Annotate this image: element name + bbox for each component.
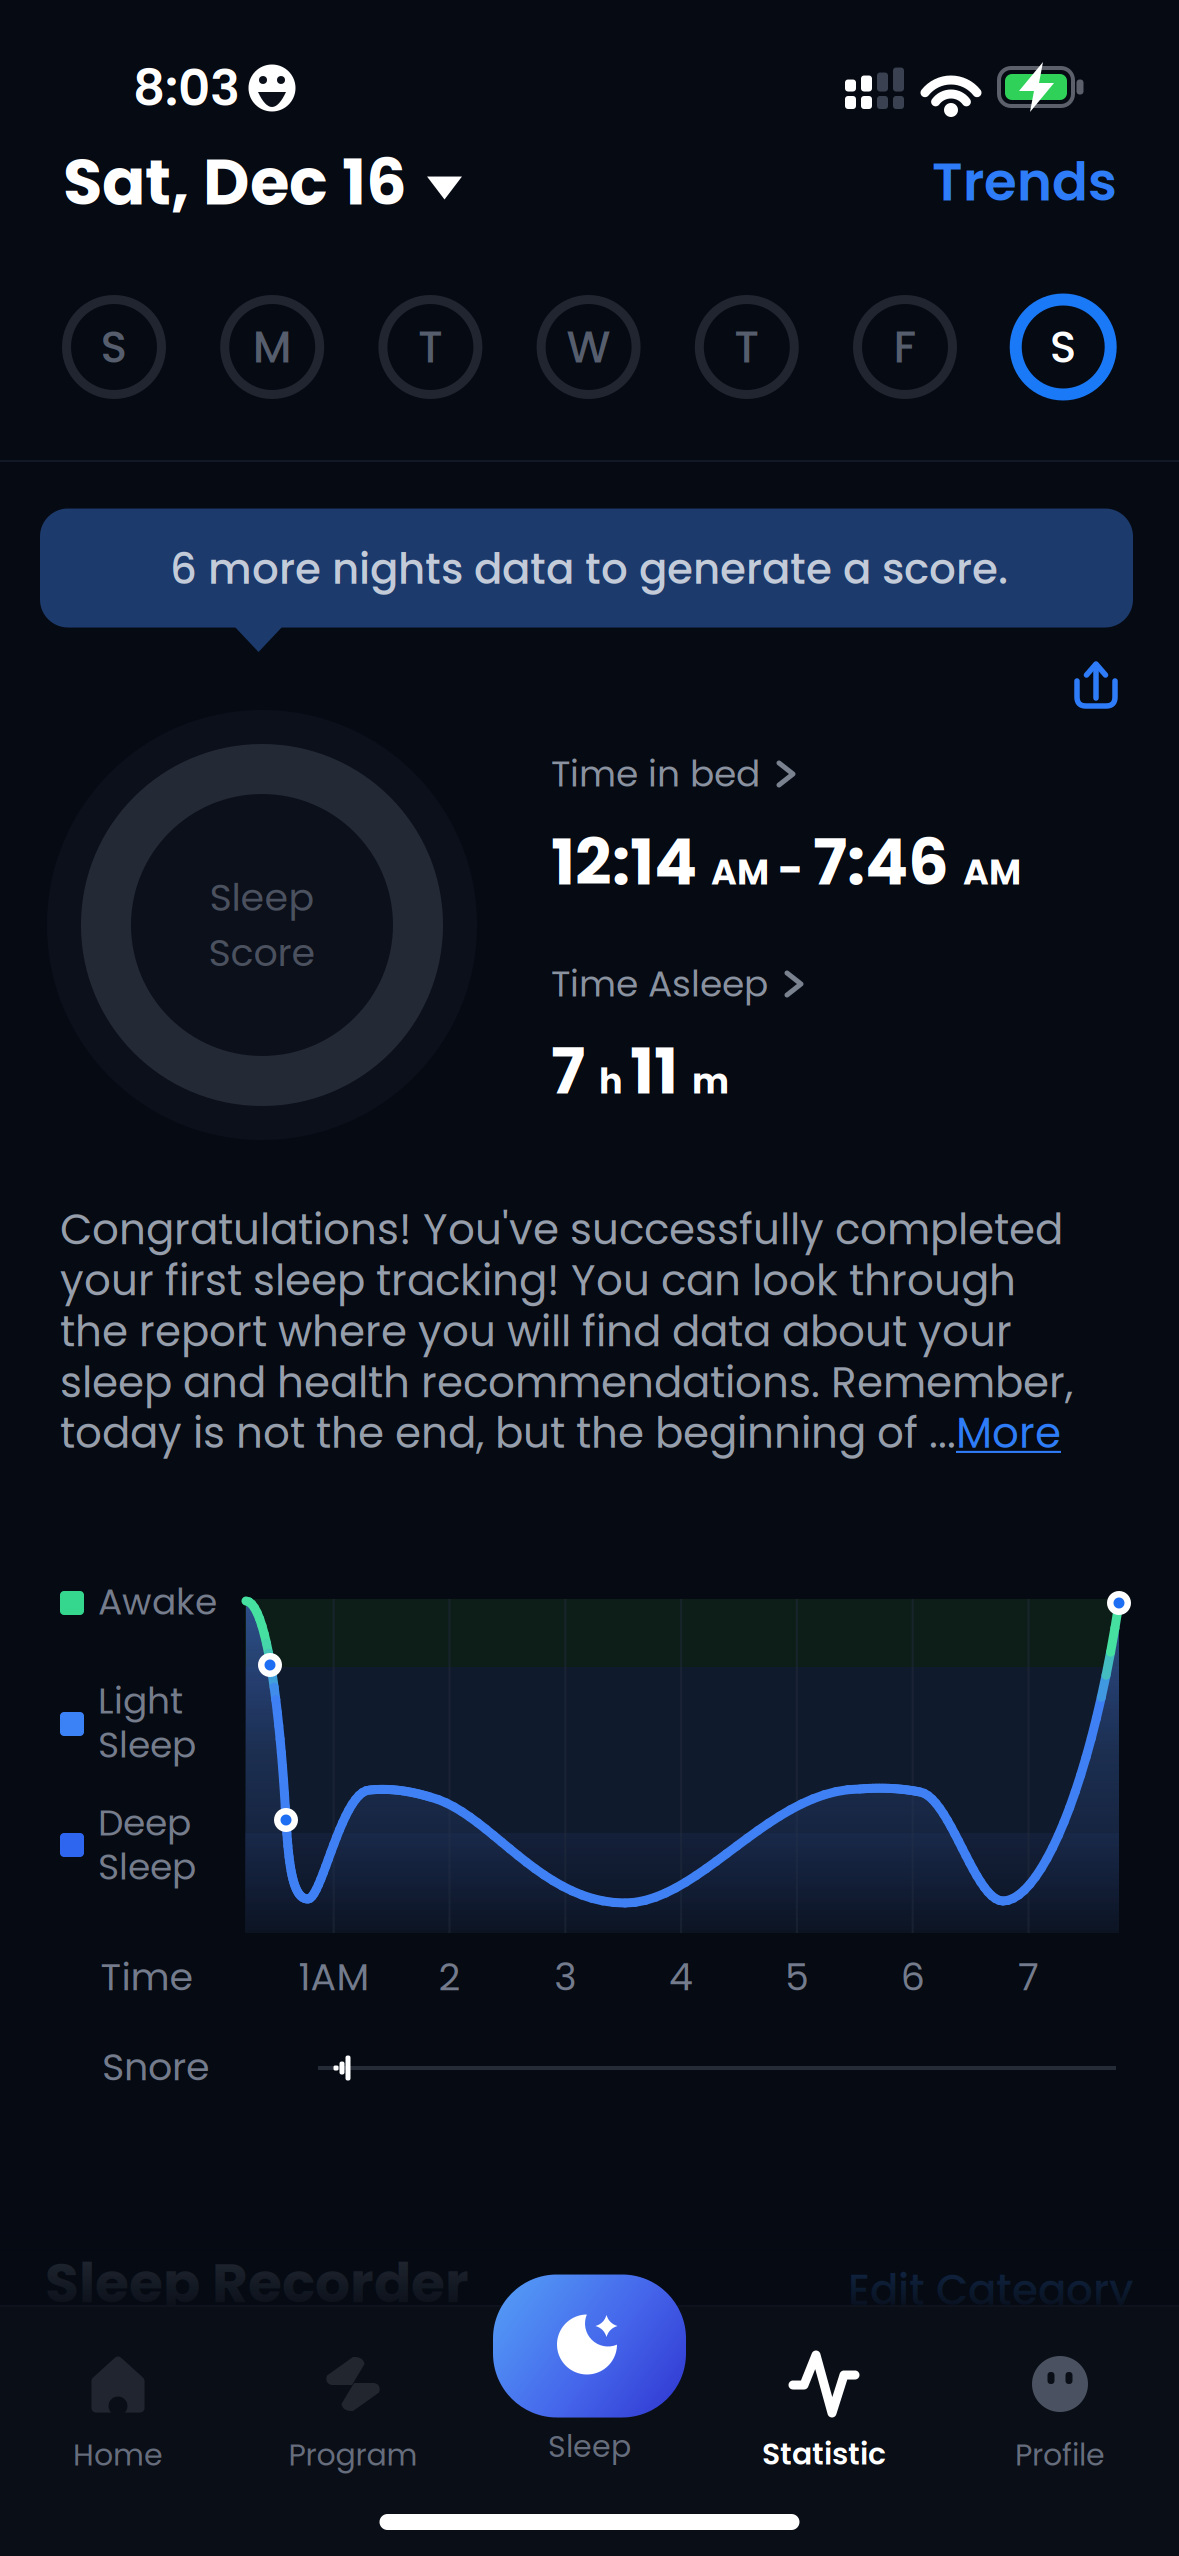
staticText: Awake: [98, 1577, 217, 1627]
staticText: Program: [288, 2434, 417, 2476]
staticText: Sleep: [209, 871, 314, 924]
staticText: Time Asleep: [551, 959, 768, 1009]
button[interactable]: Saturday: [1009, 293, 1117, 401]
staticText: Snore: [102, 2040, 210, 2094]
staticText: Score: [208, 926, 315, 979]
staticText: T: [418, 316, 443, 378]
button[interactable]: Friday: [851, 293, 959, 401]
button[interactable]: Share: [1051, 642, 1141, 732]
staticText: 12:14 AM - 7:46 AM: [551, 818, 1021, 906]
staticText: More: [956, 1404, 1061, 1462]
button[interactable]: Time Asleep: [551, 959, 804, 1009]
staticText: Time: [100, 1950, 193, 2004]
staticText: 5: [785, 1950, 809, 2004]
staticText: Edit Category: [848, 2261, 1133, 2319]
staticText: 7 h 11 m: [551, 1027, 729, 1115]
button[interactable]: Wednesday: [535, 293, 643, 401]
staticText: F: [893, 316, 916, 378]
staticText: Sat, Dec 16: [63, 137, 407, 227]
button[interactable]: Monday: [218, 293, 326, 401]
staticText: Deep: [98, 1798, 191, 1848]
staticText: Sleep: [548, 2425, 631, 2467]
staticText: Light: [98, 1676, 183, 1726]
button[interactable]: Home: [8, 2340, 228, 2490]
button[interactable]: Profile: [950, 2340, 1170, 2490]
button[interactable]: Trends: [932, 145, 1117, 219]
staticText: 3: [554, 1950, 576, 2004]
staticText: Time in bed: [551, 749, 760, 799]
staticText: Sleep: [98, 1720, 196, 1770]
staticText: T: [734, 316, 759, 378]
button[interactable]: More: [956, 1404, 1061, 1462]
staticText: S: [1050, 316, 1077, 378]
staticText: 2: [438, 1950, 460, 2004]
staticText: 7: [1018, 1950, 1039, 2004]
staticText: today is not the end, but the beginning …: [60, 1404, 956, 1462]
staticText: Statistic: [762, 2433, 886, 2475]
staticText: Congratulations! You've successfully com…: [60, 1204, 1073, 1408]
button[interactable]: Tuesday: [376, 293, 484, 401]
staticText: M: [253, 316, 292, 378]
staticText: 4: [669, 1950, 693, 2004]
staticText: S: [100, 316, 127, 378]
button[interactable]: Sat, Dec 16: [63, 137, 462, 227]
staticText: Trends: [932, 145, 1117, 219]
staticText: 6: [901, 1950, 925, 2004]
staticText: W: [567, 316, 611, 378]
staticText: Home: [73, 2434, 163, 2476]
button[interactable]: Program: [243, 2340, 463, 2490]
button[interactable]: Sleep: [469, 2271, 709, 2471]
button[interactable]: Time in bed: [551, 749, 796, 799]
staticText: Profile: [1015, 2434, 1105, 2476]
button[interactable]: Thursday: [693, 293, 801, 401]
button[interactable]: Statistic: [714, 2339, 934, 2489]
staticText: 8:03: [133, 53, 240, 123]
staticText: Sleep Recorder: [45, 2244, 469, 2321]
staticText: Sleep: [98, 1842, 196, 1892]
staticText: 6 more nights data to generate a score.: [170, 540, 1008, 598]
staticText: 1AM: [298, 1950, 369, 2004]
button[interactable]: Sunday: [60, 293, 168, 401]
button[interactable]: Edit Category: [848, 2261, 1133, 2319]
